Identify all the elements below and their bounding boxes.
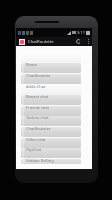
staticText: Banani chat xyxy=(26,95,49,99)
button[interactable]: Banani chat xyxy=(21,95,81,105)
staticText: Techno chat xyxy=(26,116,49,120)
button[interactable]: Video chat xyxy=(21,138,81,148)
staticText: ChatRoulette xyxy=(26,127,51,131)
staticText: Room xyxy=(26,63,38,67)
button[interactable]: ChatRoulette xyxy=(21,127,81,137)
button[interactable]: Techno chat xyxy=(21,116,81,126)
button[interactable]: ChatRoulette xyxy=(21,74,81,84)
button[interactable]: FlipChat xyxy=(21,148,81,158)
staticText: Adda Chat xyxy=(26,85,46,89)
button[interactable]: Hidden Rolling xyxy=(21,159,81,164)
button[interactable]: Adda Chat xyxy=(21,85,81,95)
staticText: FlipChat xyxy=(26,148,42,152)
button[interactable]: Refresh xyxy=(75,38,82,45)
button[interactable]: More options xyxy=(86,38,90,45)
staticText: Friends chat xyxy=(26,106,49,110)
staticText: 3:11 xyxy=(77,30,85,35)
staticText: Hidden Rolling xyxy=(26,159,54,163)
button[interactable]: Friends chat xyxy=(21,106,81,116)
staticText: ChatRoulette xyxy=(28,39,54,45)
staticText: ChatRoulette xyxy=(26,74,51,78)
button[interactable]: Room xyxy=(21,63,81,73)
staticText: Video chat xyxy=(26,138,46,142)
